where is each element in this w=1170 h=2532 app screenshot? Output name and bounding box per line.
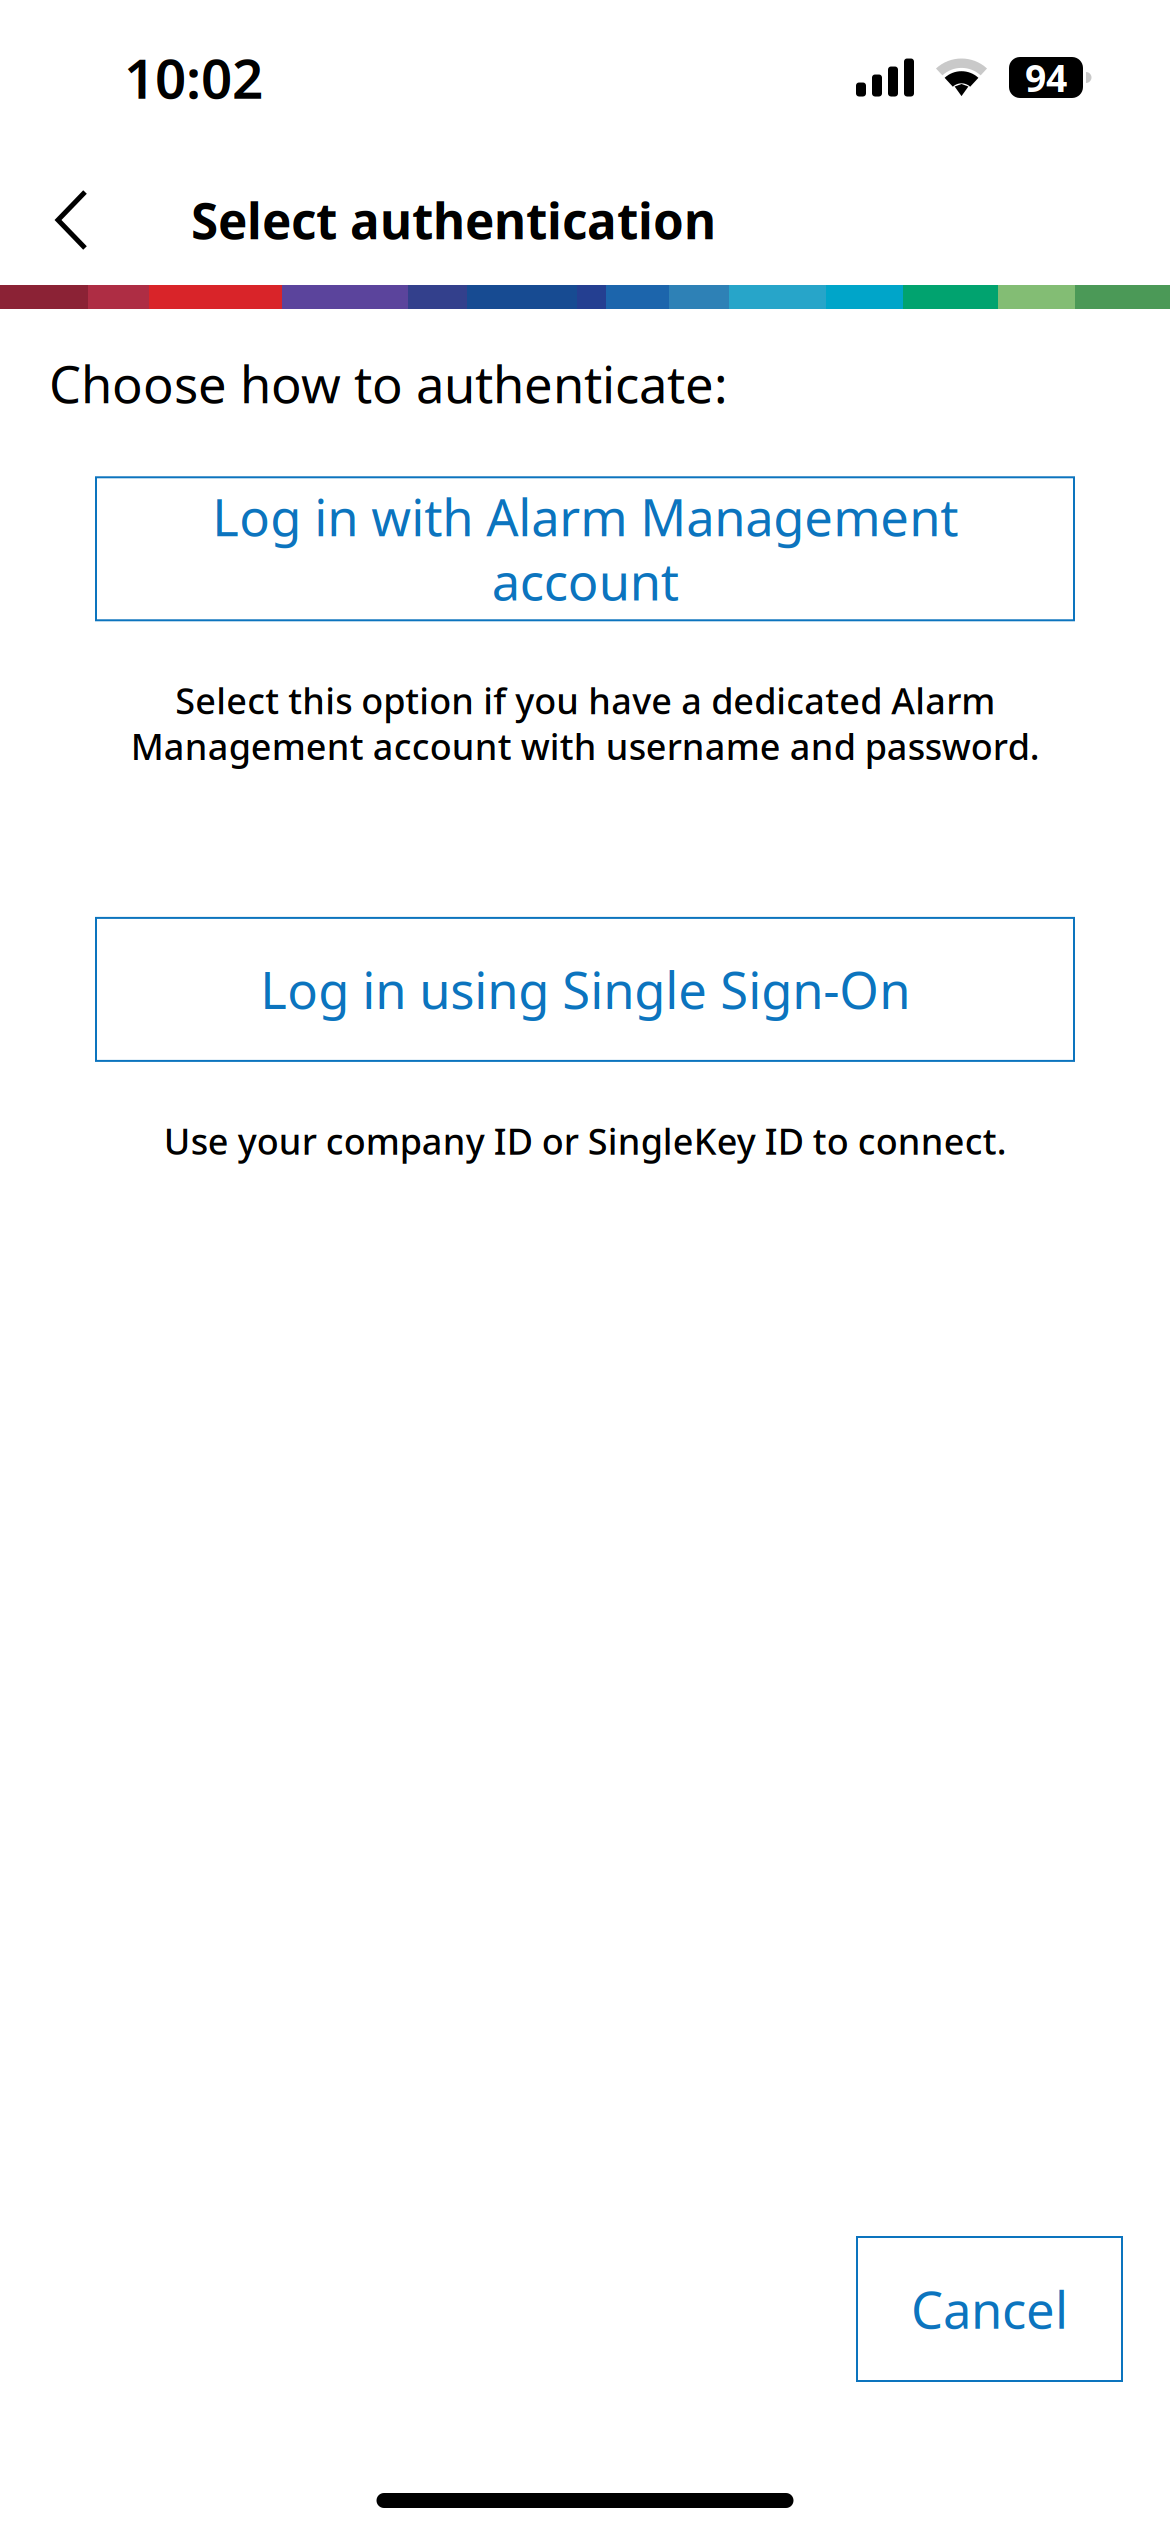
staticText: Use your company ID or SingleKey ID to c…: [163, 1117, 1006, 1165]
button[interactable]: Back: [19, 165, 124, 275]
staticText: Choose how to authenticate:: [49, 350, 728, 417]
staticText: Log in using Single Sign-On: [260, 956, 910, 1023]
button[interactable]: Log in using Single Sign-On: [96, 918, 1074, 1061]
staticText: 10:02: [124, 41, 263, 114]
staticText: Log in with Alarm Management account: [212, 483, 958, 615]
staticText: Cancel: [911, 2275, 1068, 2343]
button[interactable]: Cancel: [857, 2237, 1122, 2381]
button[interactable]: Log in with Alarm Management account: [96, 477, 1074, 620]
staticText: Select this option if you have a dedicat…: [130, 676, 1039, 770]
staticText: 94: [1025, 53, 1067, 102]
staticText: Select authentication: [191, 187, 716, 253]
